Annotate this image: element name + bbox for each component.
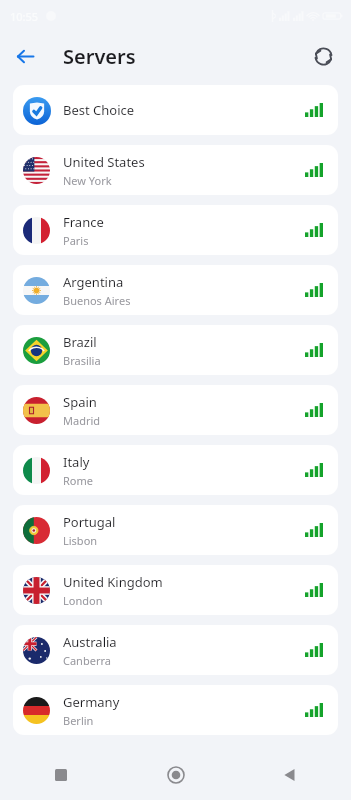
staticText: Brasilia xyxy=(63,353,101,368)
staticText: Rome xyxy=(63,473,93,488)
staticText: Portugal xyxy=(63,513,116,531)
staticText: Germany xyxy=(63,693,120,711)
staticText: Canberra xyxy=(63,653,111,668)
button[interactable]: United States xyxy=(13,145,338,195)
staticText: New York xyxy=(63,173,112,188)
button[interactable]: Back xyxy=(6,37,44,75)
staticText: Lisbon xyxy=(63,533,98,548)
staticText: Australia xyxy=(63,633,117,651)
staticText: Servers xyxy=(63,43,136,70)
button[interactable]: Portugal xyxy=(13,505,338,555)
button[interactable]: Italy xyxy=(13,445,338,495)
button[interactable]: Germany xyxy=(13,685,338,735)
button[interactable]: Spain xyxy=(13,385,338,435)
staticText: London xyxy=(63,593,103,608)
button[interactable]: Argentina xyxy=(13,265,338,315)
button[interactable]: United Kingdom xyxy=(13,565,338,615)
button[interactable]: Refresh xyxy=(304,37,342,75)
staticText: Buenos Aires xyxy=(63,293,131,308)
staticText: Madrid xyxy=(63,413,101,428)
button[interactable]: Best Choice xyxy=(13,85,338,135)
staticText: Berlin xyxy=(63,713,94,728)
button[interactable]: Australia xyxy=(13,625,338,675)
button[interactable]: Back xyxy=(269,754,311,796)
staticText: Italy xyxy=(63,453,90,471)
staticText: Argentina xyxy=(63,273,124,291)
button[interactable]: Recent apps xyxy=(40,754,82,796)
staticText: France xyxy=(63,213,104,231)
button[interactable]: Brazil xyxy=(13,325,338,375)
button[interactable]: France xyxy=(13,205,338,255)
staticText: Brazil xyxy=(63,333,97,351)
button[interactable]: Home xyxy=(155,754,197,796)
staticText: Spain xyxy=(63,393,97,411)
staticText: Paris xyxy=(63,233,89,248)
staticText: United Kingdom xyxy=(63,573,163,591)
staticText: Best Choice xyxy=(63,101,135,119)
staticText: United States xyxy=(63,153,145,171)
